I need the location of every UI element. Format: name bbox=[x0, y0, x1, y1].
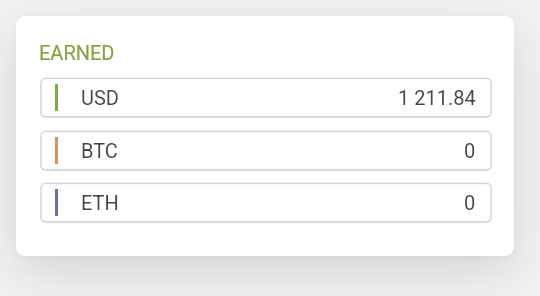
button[interactable]: BTC bbox=[40, 130, 492, 171]
staticText: 0 bbox=[464, 191, 476, 214]
staticText: BTC bbox=[81, 139, 118, 162]
button[interactable]: ETH bbox=[40, 182, 492, 223]
staticText: USD bbox=[81, 86, 119, 109]
staticText: 1 211.84 bbox=[398, 86, 476, 109]
staticText: ETH bbox=[81, 191, 119, 214]
staticText: EARNED bbox=[39, 41, 115, 64]
button[interactable]: USD bbox=[40, 77, 492, 118]
staticText: 0 bbox=[464, 139, 476, 162]
